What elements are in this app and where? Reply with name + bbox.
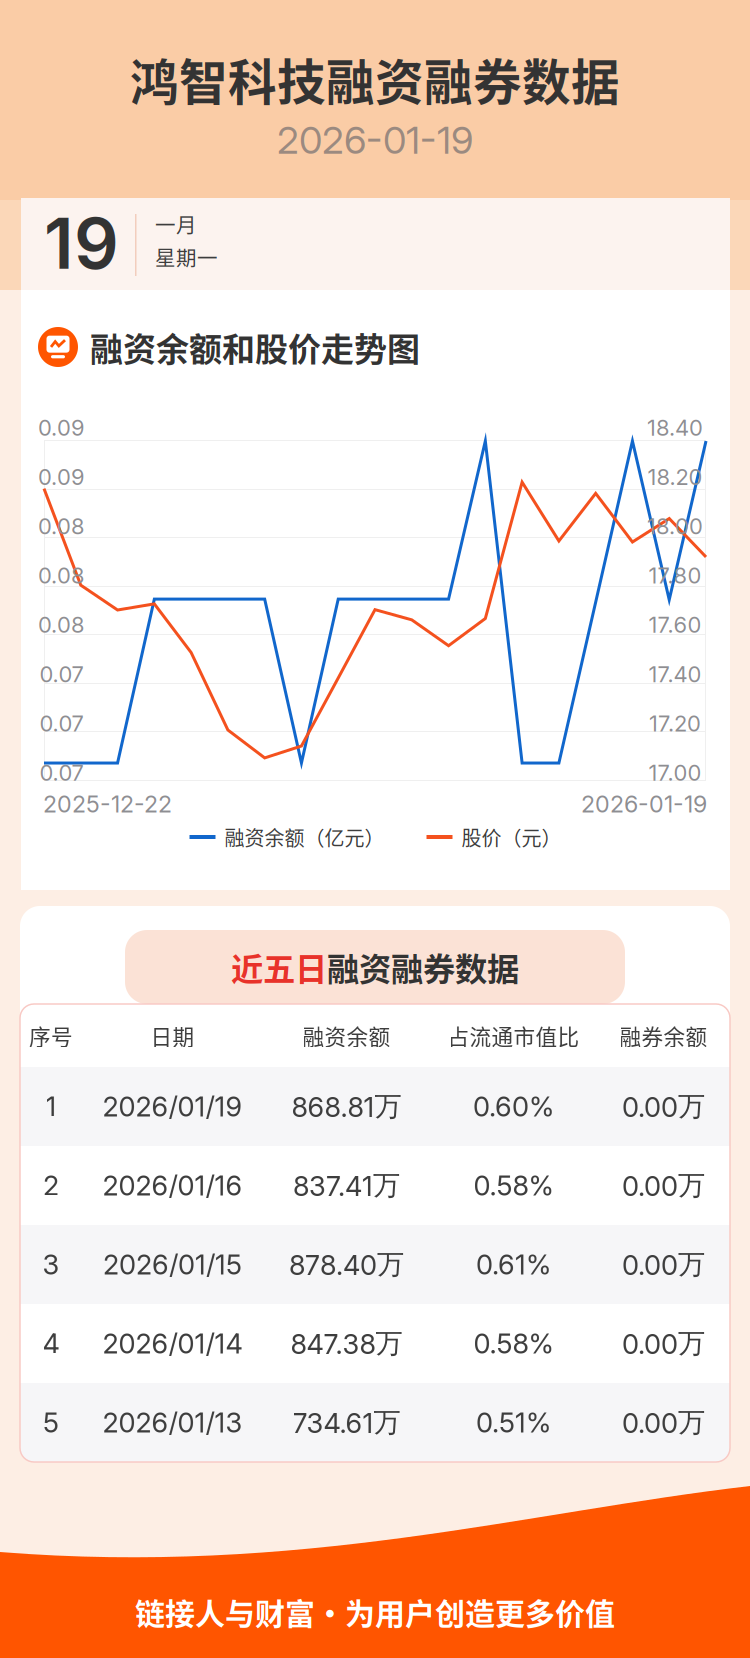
staticText: 2 [43,1169,59,1202]
staticText: 股价（元） [461,822,561,851]
staticText: 5 [43,1406,59,1439]
staticText: 0.09 [38,414,85,441]
staticText: 0.08 [38,611,85,638]
staticText: 0.00万 [622,1168,705,1203]
staticText: 0.60% [473,1090,554,1123]
staticText: 17.40 [648,661,701,687]
staticText: 0.00万 [622,1247,705,1282]
staticText: 序号 [29,1020,73,1051]
staticText: 2026-01-19 [277,117,473,163]
staticText: 2026/01/19 [102,1090,242,1123]
staticText: 17.60 [648,611,701,638]
staticText: 17.80 [648,562,701,589]
staticText: 17.00 [648,759,701,786]
staticText: 1 [45,1090,56,1123]
staticText: 融资余额（亿元） [224,822,384,851]
staticText: 0.61% [476,1248,551,1281]
staticText: 0.58% [473,1169,553,1202]
staticText: 星期一 [155,242,218,272]
staticText: 0.00万 [622,1089,705,1124]
staticText: 4 [42,1327,59,1360]
staticText: 0.00万 [622,1326,705,1361]
staticText: 18.40 [647,414,703,441]
staticText: 一月 [155,209,197,239]
staticText: 18.20 [647,464,702,490]
staticText: 0.58% [473,1327,553,1360]
staticText: 17.20 [649,710,701,737]
staticText: 0.08 [38,562,85,589]
staticText: 837.41万 [293,1168,400,1203]
staticText: 0.09 [38,464,85,490]
staticText: 3 [42,1248,59,1281]
staticText: 19 [44,201,119,286]
staticText: 0.08 [38,513,85,539]
staticText: 近五日 [231,944,327,990]
staticText: 2026-01-19 [581,790,707,818]
staticText: 融资融券数据 [327,944,519,990]
staticText: 2025-12-22 [43,790,172,818]
staticText: 18.00 [647,513,703,539]
staticText: 734.61万 [292,1405,400,1440]
staticText: 日期 [150,1020,194,1051]
staticText: 2026/01/14 [102,1327,242,1360]
staticText: 链接人与财富·为用户创造更多价值 [135,1590,615,1633]
staticText: 2026/01/15 [103,1248,242,1281]
staticText: 融资余额和股价走势图 [90,323,420,371]
staticText: 鸿智科技融资融券数据 [130,44,620,114]
staticText: 847.38万 [290,1326,402,1361]
staticText: 0.07 [39,710,83,737]
staticText: 占流通市值比 [447,1020,579,1051]
staticText: 2026/01/13 [102,1406,242,1439]
staticText: 0.00万 [622,1405,705,1440]
staticText: 融券余额 [619,1020,707,1051]
staticText: 融资余额 [302,1020,390,1051]
staticText: 0.51% [476,1406,551,1439]
staticText: 0.07 [39,661,83,687]
staticText: 0.07 [39,759,83,786]
staticText: 868.81万 [291,1089,401,1124]
staticText: 2026/01/16 [102,1169,242,1202]
staticText: 878.40万 [289,1247,404,1282]
